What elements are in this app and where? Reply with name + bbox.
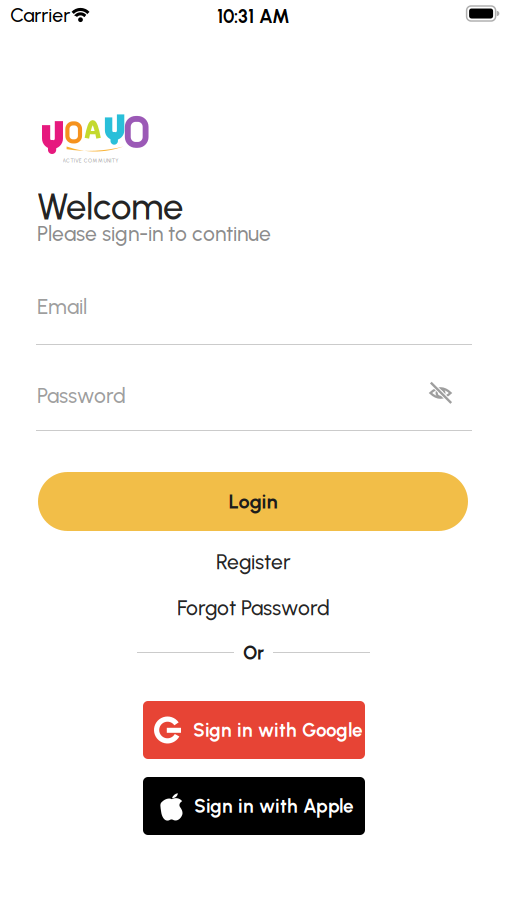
button[interactable]: Sign in with Google: [143, 701, 365, 759]
staticText: Forgot Password: [177, 595, 330, 621]
button[interactable]: Login: [38, 472, 468, 531]
staticText: Or: [243, 642, 264, 664]
staticText: ACTIVE COMMUNITY: [62, 157, 118, 164]
staticText: Welcome: [37, 185, 183, 229]
staticText: Sign in with Apple: [194, 795, 354, 817]
staticText: Password: [37, 383, 126, 408]
staticText: Sign in with Google: [193, 719, 363, 741]
button[interactable]: Forgot Password: [153, 591, 353, 625]
button[interactable]: Register: [173, 545, 333, 579]
staticText: Login: [228, 489, 277, 513]
button[interactable]: Sign in with Apple: [143, 777, 365, 835]
staticText: Email: [37, 294, 87, 319]
staticText: Register: [216, 549, 291, 575]
button[interactable]: Show password: [424, 376, 458, 410]
staticText: 10:31 AM: [217, 5, 290, 28]
staticText: Please sign-in to continue: [37, 221, 271, 246]
staticText: Carrier: [10, 4, 70, 27]
